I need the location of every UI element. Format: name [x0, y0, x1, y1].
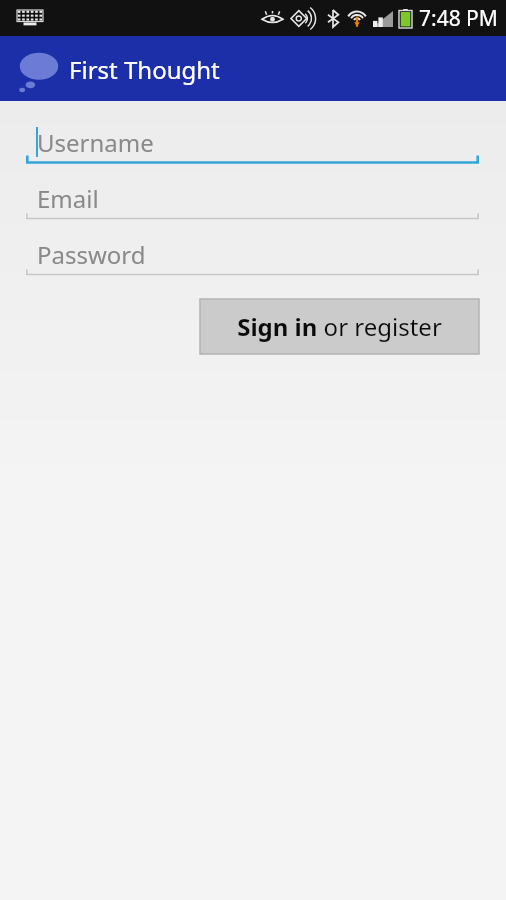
button[interactable]: Username	[26, 123, 479, 167]
button[interactable]: Email	[26, 179, 479, 223]
staticText: 7:48 PM	[419, 4, 498, 33]
button[interactable]: Sign in or register	[200, 299, 479, 354]
button[interactable]: Password	[26, 235, 479, 279]
staticText: Email	[37, 182, 99, 215]
staticText: Sign in or register	[237, 310, 442, 343]
staticText: Username	[37, 126, 154, 159]
staticText: First Thought	[69, 53, 220, 86]
other: App logo	[15, 48, 63, 96]
staticText: Password	[37, 238, 146, 271]
